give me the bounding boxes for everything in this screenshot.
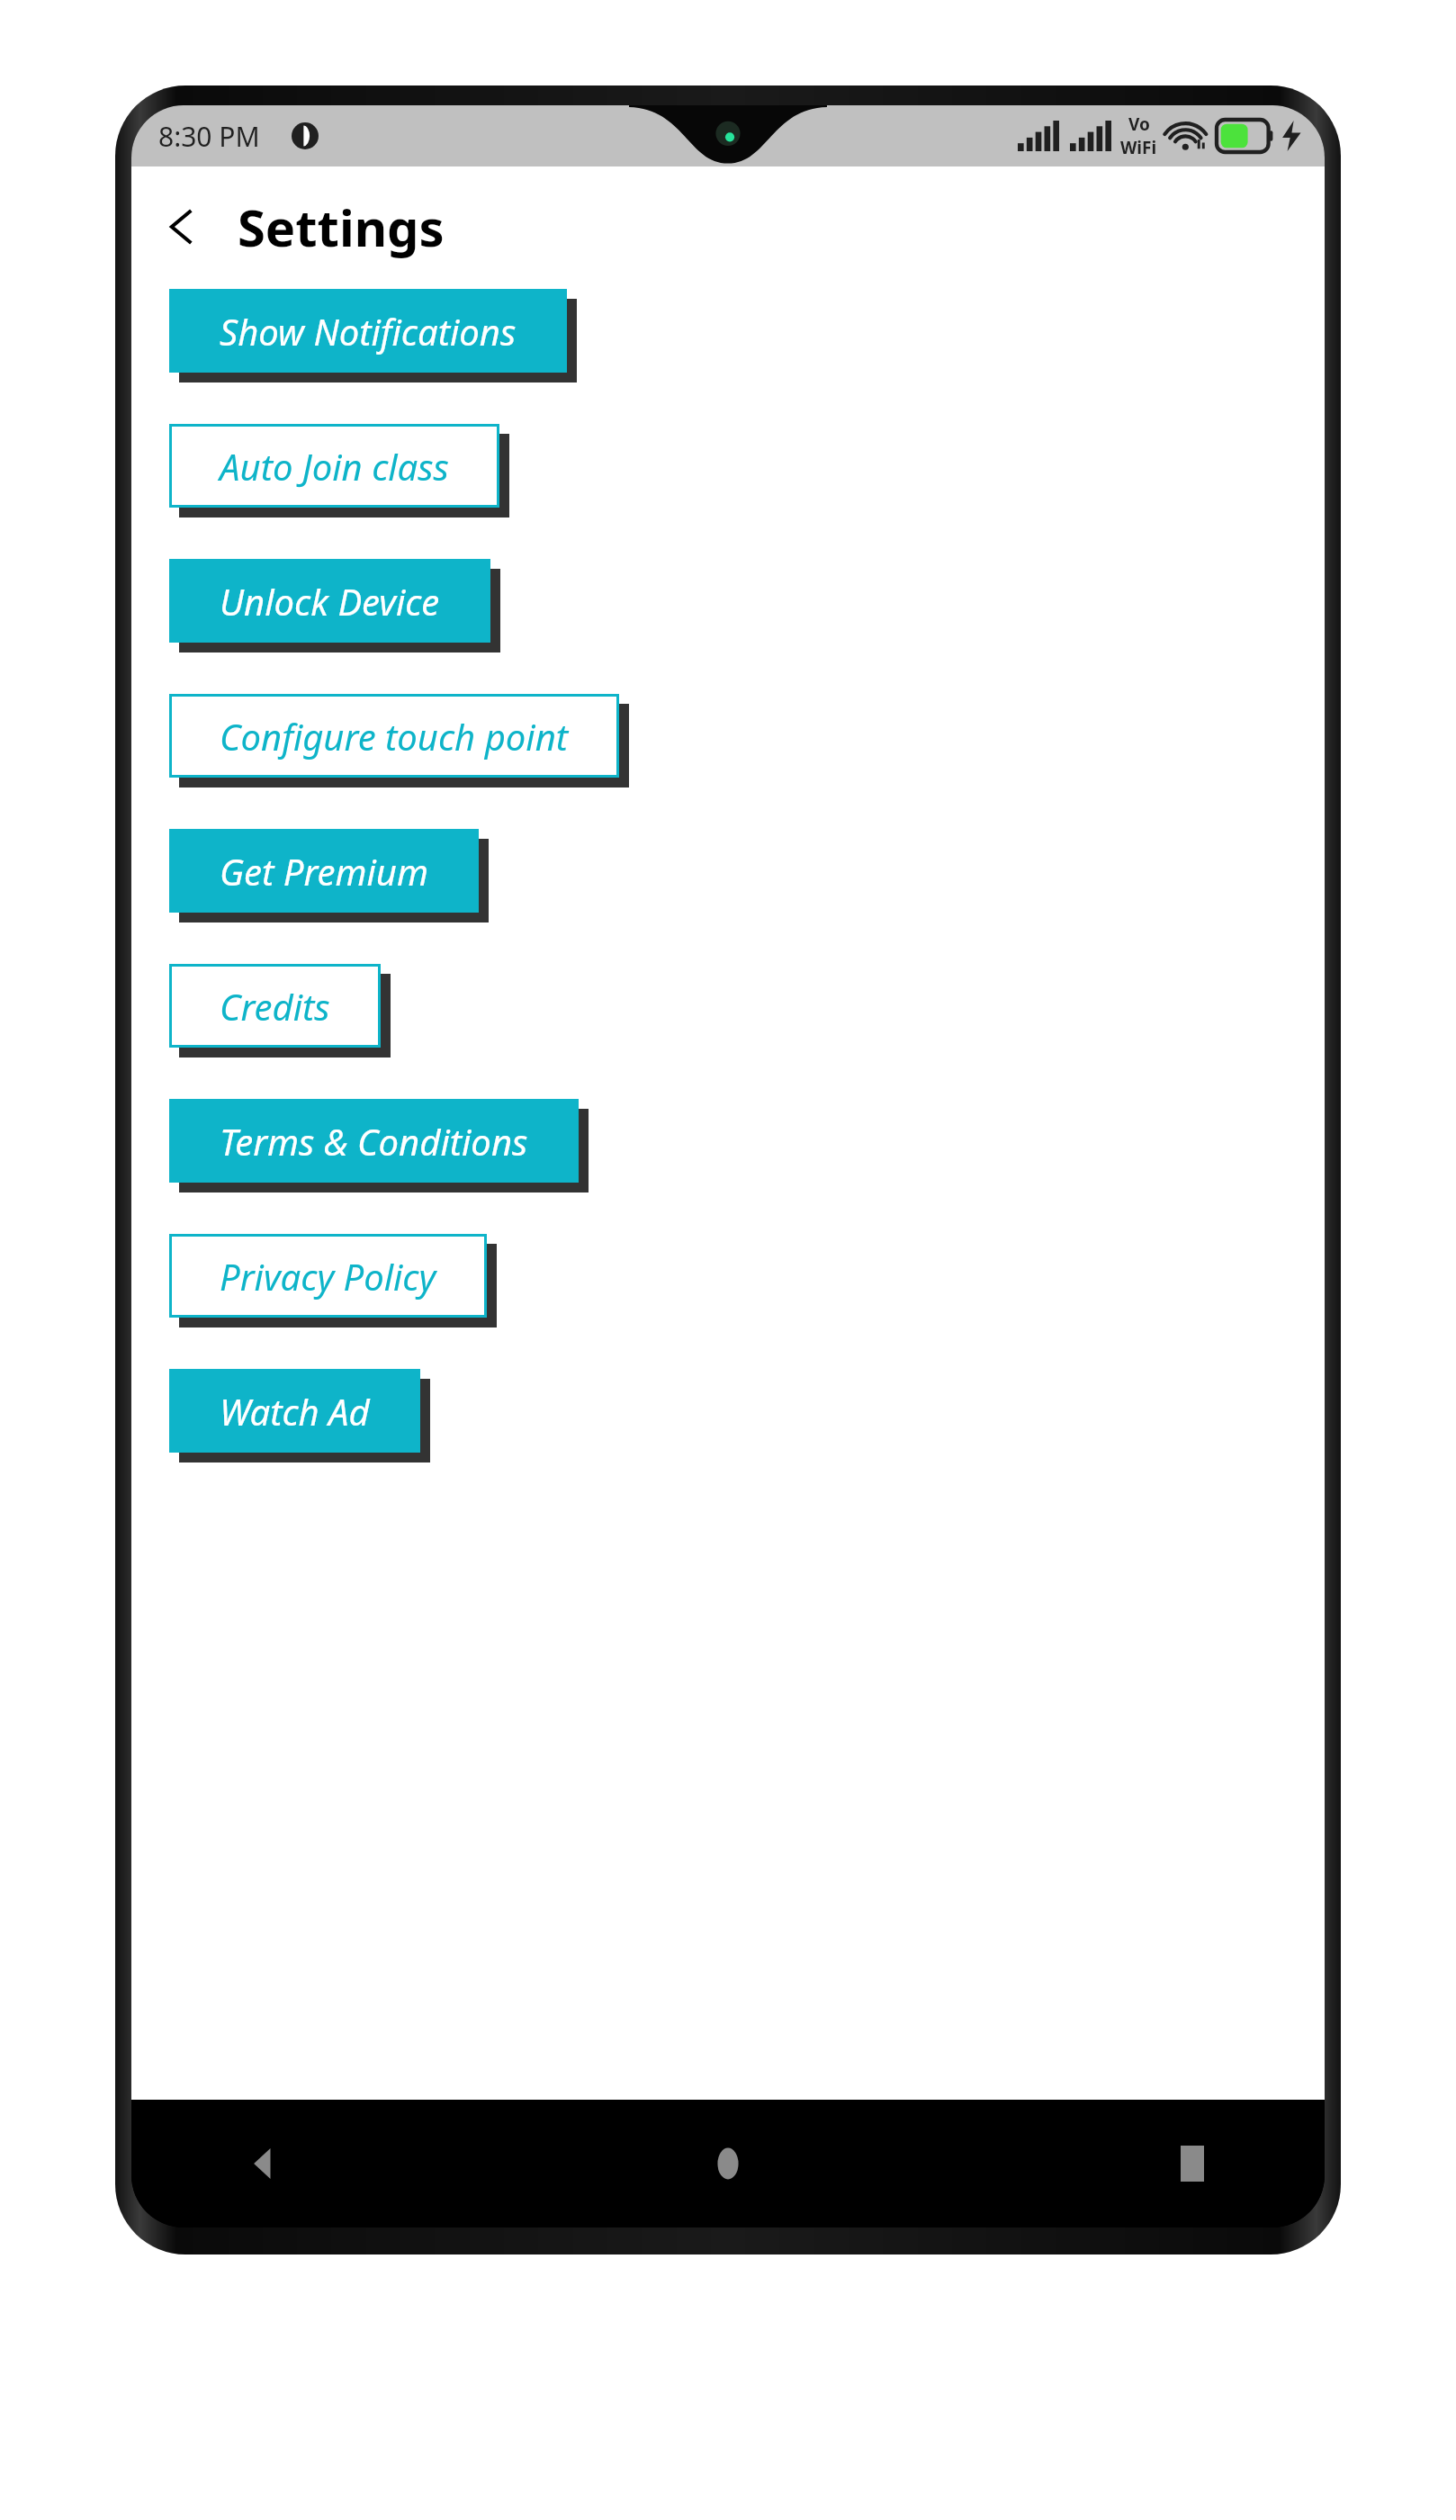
staticText: Configure touch point: [220, 712, 569, 760]
staticText: Get Premium: [229, 857, 438, 905]
button[interactable]: Terms & Conditions: [169, 1099, 579, 1183]
staticText: 8:30 PM: [158, 118, 260, 155]
staticText: Watch Ad: [220, 1387, 370, 1435]
staticText: Auto Join class: [220, 442, 449, 490]
button[interactable]: Get Premium: [169, 829, 479, 913]
button[interactable]: Home: [695, 2130, 761, 2197]
staticText: Privacy Policy: [220, 1252, 436, 1300]
staticText: Credits: [229, 992, 340, 1040]
button[interactable]: Privacy Policy: [169, 1234, 487, 1318]
button[interactable]: Recents: [1159, 2130, 1226, 2197]
button[interactable]: Credits: [169, 964, 381, 1048]
staticText: Vo: [1128, 112, 1150, 136]
staticText: Terms & Conditions: [220, 1117, 528, 1165]
button[interactable]: Auto Join class: [169, 424, 499, 508]
staticText: Show Notifications: [229, 317, 526, 365]
staticText: Get Premium: [220, 847, 428, 895]
button[interactable]: Back: [230, 2130, 297, 2197]
button[interactable]: Unlock Device: [169, 559, 490, 643]
staticText: Settings: [238, 193, 445, 261]
staticText: WiFi: [1120, 136, 1157, 159]
staticText: Configure touch point: [229, 722, 579, 770]
staticText: Auto Join class: [229, 452, 459, 500]
button[interactable]: Configure touch point: [169, 694, 619, 778]
staticText: Privacy Policy: [229, 1262, 446, 1310]
staticText: Unlock Device: [220, 577, 440, 625]
staticText: Show Notifications: [220, 307, 517, 355]
staticText: Watch Ad: [229, 1397, 380, 1445]
staticText: Terms & Conditions: [229, 1127, 538, 1175]
staticText: Credits: [220, 982, 330, 1030]
button[interactable]: Back: [149, 194, 214, 259]
button[interactable]: Show Notifications: [169, 289, 567, 373]
button[interactable]: Watch Ad: [169, 1369, 420, 1453]
staticText: Unlock Device: [229, 587, 450, 635]
